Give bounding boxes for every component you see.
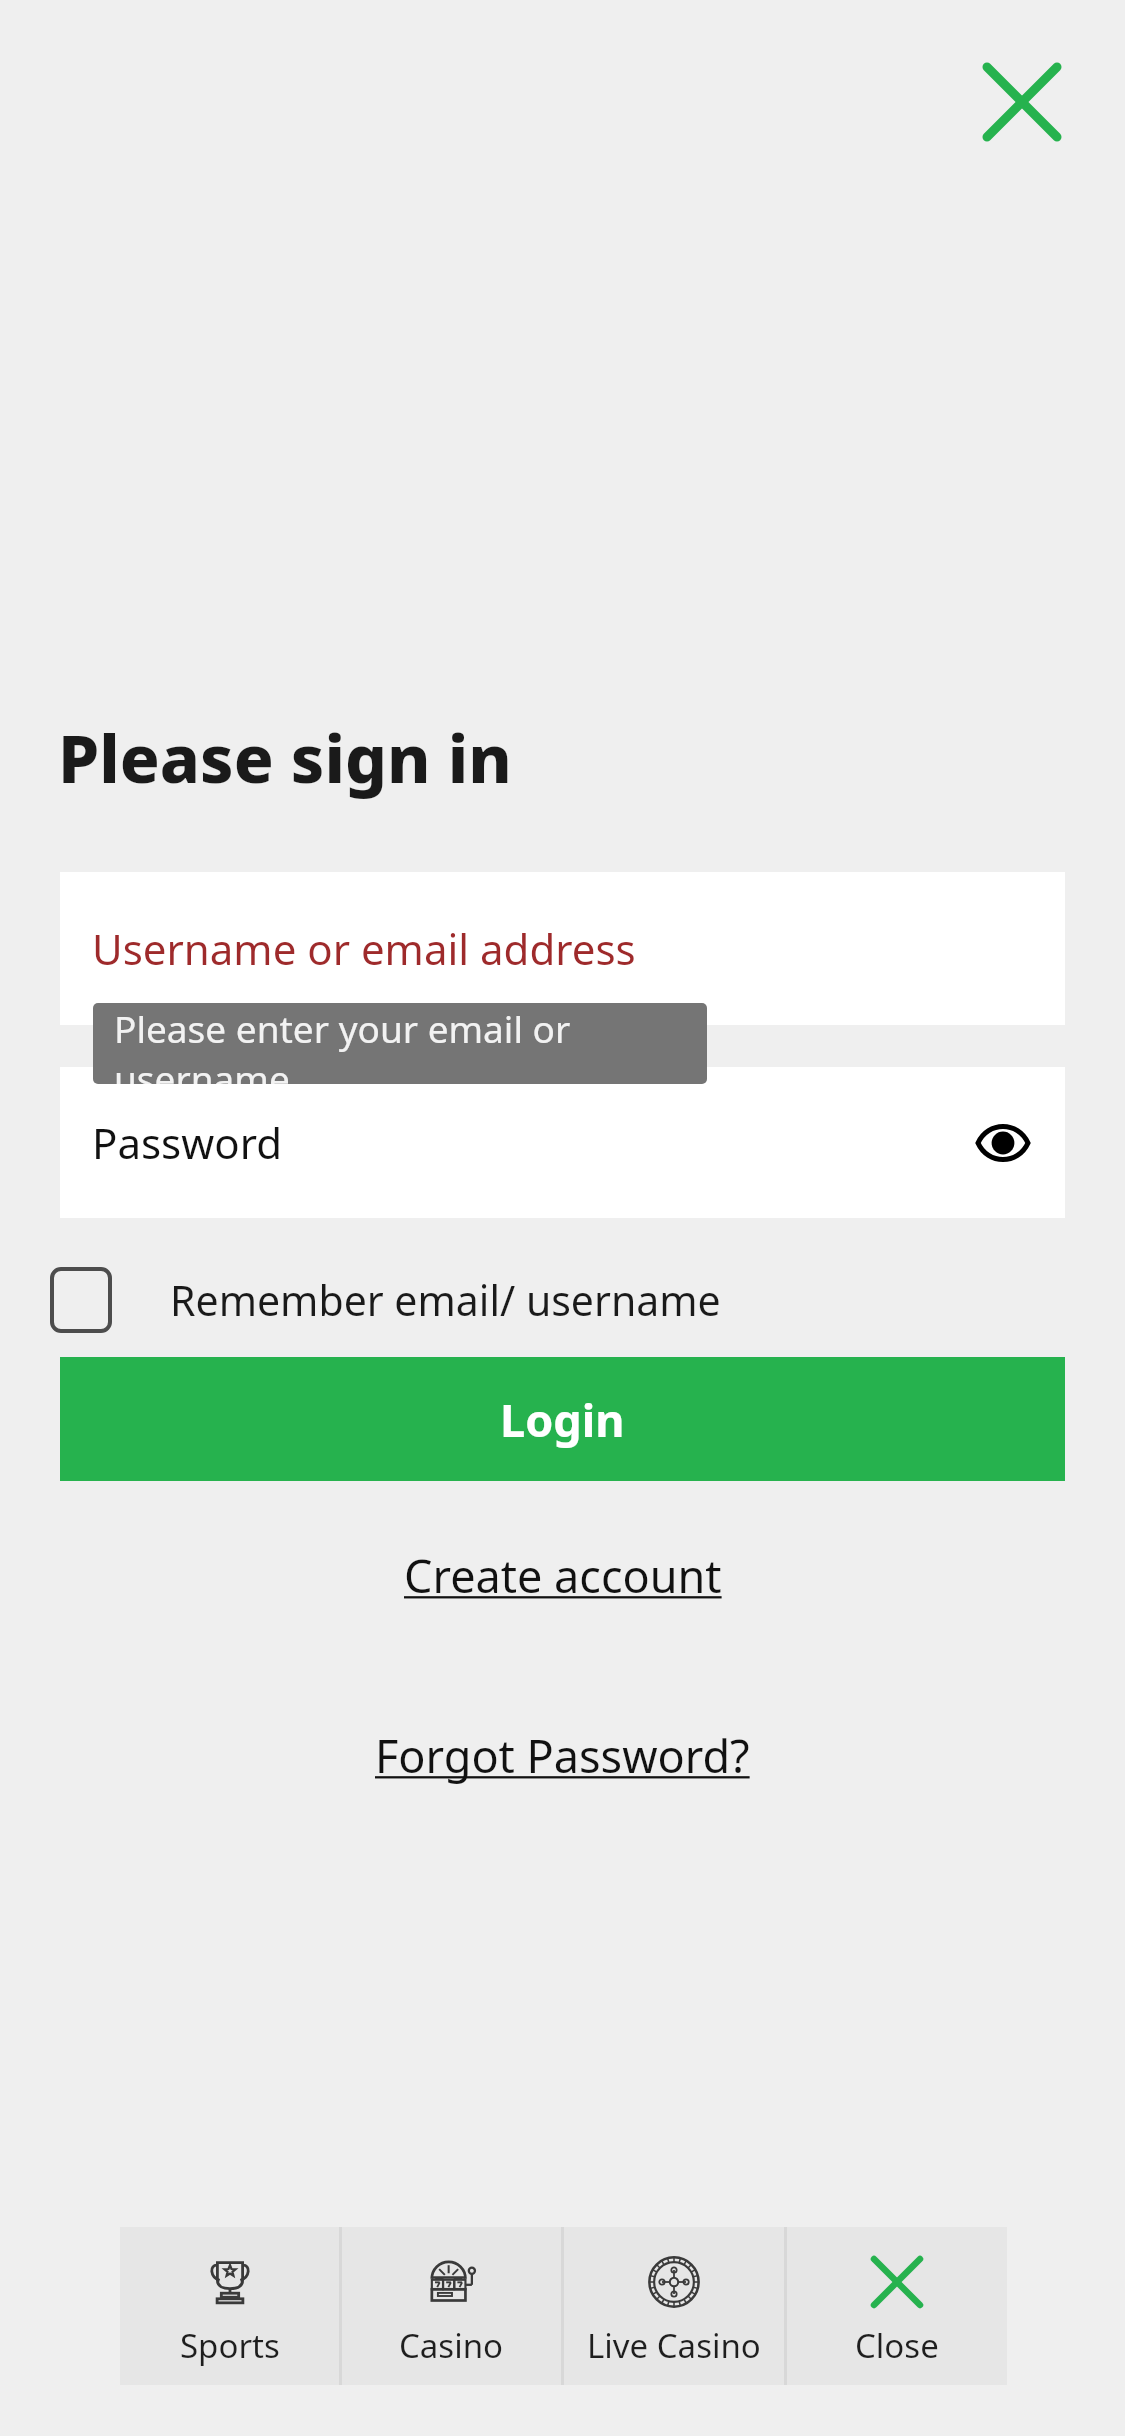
staticText: Login (500, 1389, 625, 1450)
button[interactable]: Forgot Password? (0, 1714, 1125, 1796)
staticText: Please enter your email or username (114, 1003, 707, 1084)
button[interactable]: Password (60, 1067, 1065, 1218)
button[interactable]: Close (787, 2227, 1007, 2385)
staticText: Sports (180, 2323, 280, 2368)
staticText: Forgot Password? (375, 1725, 750, 1786)
staticText: Password (92, 1114, 282, 1171)
staticText: Close (855, 2323, 939, 2368)
button[interactable]: Sports (120, 2227, 339, 2385)
staticText: Create account (404, 1545, 722, 1606)
button[interactable]: Close (960, 40, 1084, 164)
staticText: Username or email address (92, 920, 636, 977)
button[interactable]: Casino (342, 2227, 561, 2385)
staticText: Casino (399, 2323, 504, 2368)
button[interactable]: Login (60, 1357, 1065, 1481)
button[interactable]: Username or email address (60, 872, 1065, 1025)
other: Close (872, 2257, 922, 2307)
button[interactable]: Create account (0, 1534, 1125, 1616)
button[interactable]: Show password (957, 1097, 1049, 1189)
staticText: Live Casino (587, 2323, 761, 2368)
button[interactable]: Live Casino (564, 2227, 784, 2385)
button[interactable]: Remember email/ username (50, 1250, 721, 1350)
staticText: Please sign in (58, 712, 512, 802)
staticText: Remember email/ username (170, 1272, 721, 1328)
